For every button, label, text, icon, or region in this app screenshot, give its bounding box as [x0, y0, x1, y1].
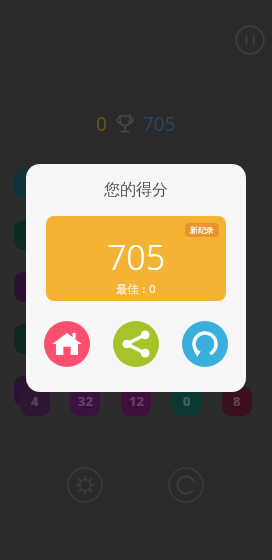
staticText: 705 [46, 234, 226, 280]
button[interactable]: Replay [182, 321, 228, 367]
staticText: 4 [31, 392, 39, 410]
staticText: 新纪录 [190, 225, 214, 235]
staticText: 您的得分 [26, 180, 246, 200]
staticText: 705 [143, 111, 176, 137]
button[interactable]: Home [44, 321, 90, 367]
staticText: 0 [96, 111, 107, 137]
button[interactable]: Restart [168, 467, 204, 503]
staticText: 0 [183, 392, 191, 410]
button[interactable]: Settings [67, 467, 103, 503]
staticText: 32 [78, 392, 93, 410]
staticText: 最佳：0 [46, 281, 226, 296]
button[interactable]: Share [113, 321, 159, 367]
button[interactable]: Pause [235, 25, 265, 55]
staticText: 8 [233, 392, 241, 410]
staticText: 12 [129, 392, 144, 410]
